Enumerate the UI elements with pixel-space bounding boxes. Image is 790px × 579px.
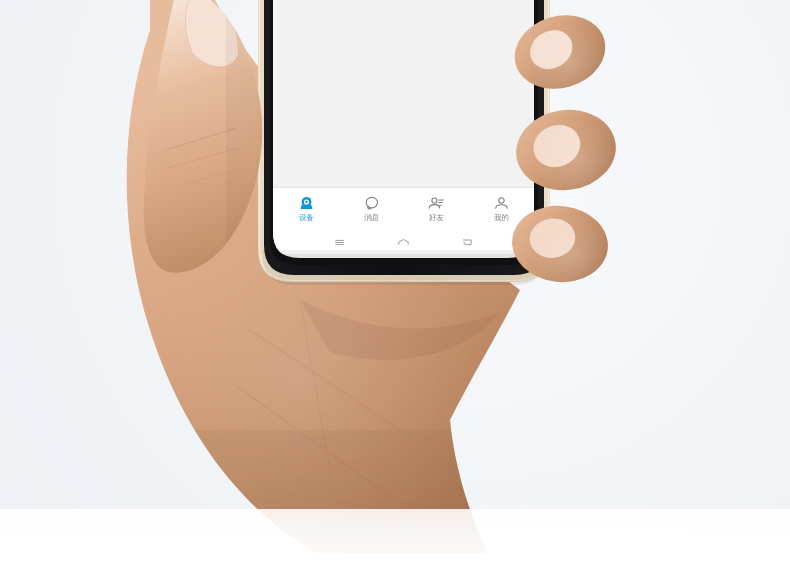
staticText: 设备 (299, 213, 314, 222)
button[interactable]: Back (435, 230, 499, 254)
button[interactable]: 我的 (469, 188, 534, 230)
button[interactable]: 设备 (273, 188, 339, 230)
button[interactable]: 好友 (404, 188, 469, 230)
staticText: 消息 (364, 213, 379, 222)
staticText: 好友 (429, 213, 444, 222)
button[interactable]: Home (371, 230, 435, 254)
button[interactable]: 消息 (339, 188, 404, 230)
button[interactable]: Recent apps (307, 230, 371, 254)
staticText: 我的 (494, 213, 509, 222)
